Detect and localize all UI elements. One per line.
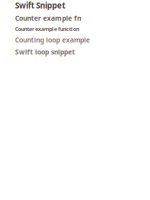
staticText: Swift Snippet (15, 0, 65, 11)
staticText: Counter example function (15, 25, 79, 33)
staticText: Swift loop snippet (15, 47, 75, 56)
staticText: Counter example fn (15, 14, 81, 22)
staticText: Counting loop example (15, 36, 90, 44)
